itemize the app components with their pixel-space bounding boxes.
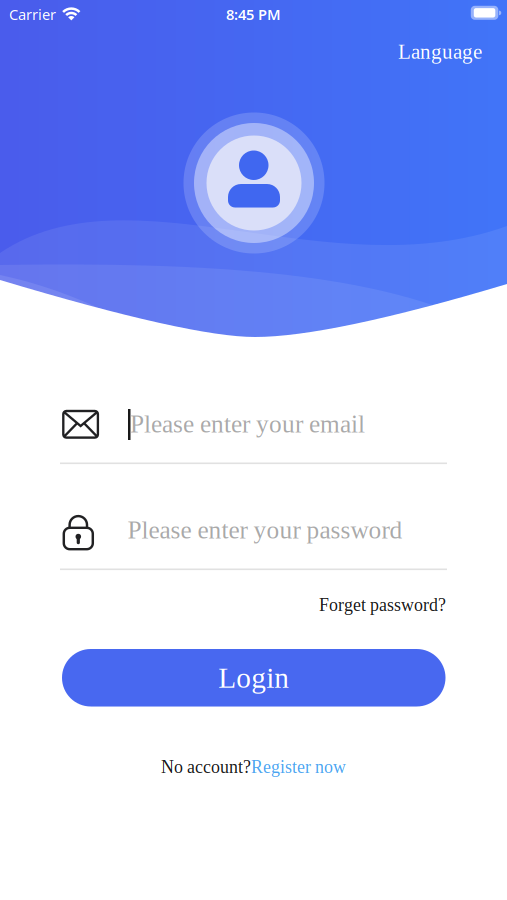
button[interactable]: Forget password? (319, 595, 446, 615)
button[interactable]: Please enter your password (60, 510, 447, 571)
button[interactable]: Language (398, 40, 482, 63)
button[interactable]: Register now (251, 757, 346, 777)
staticText: Please enter your email (130, 410, 365, 438)
staticText: Please enter your password (127, 516, 402, 544)
button[interactable]: Login (62, 649, 445, 706)
staticText: Language (398, 40, 482, 63)
staticText: No account? (161, 757, 251, 777)
staticText: Forget password? (319, 595, 446, 615)
button[interactable]: Please enter your email (60, 404, 447, 465)
staticText: Carrier (9, 4, 56, 24)
staticText: 8:45 PM (226, 4, 281, 24)
staticText: Register now (251, 757, 346, 777)
staticText: Login (218, 661, 289, 694)
